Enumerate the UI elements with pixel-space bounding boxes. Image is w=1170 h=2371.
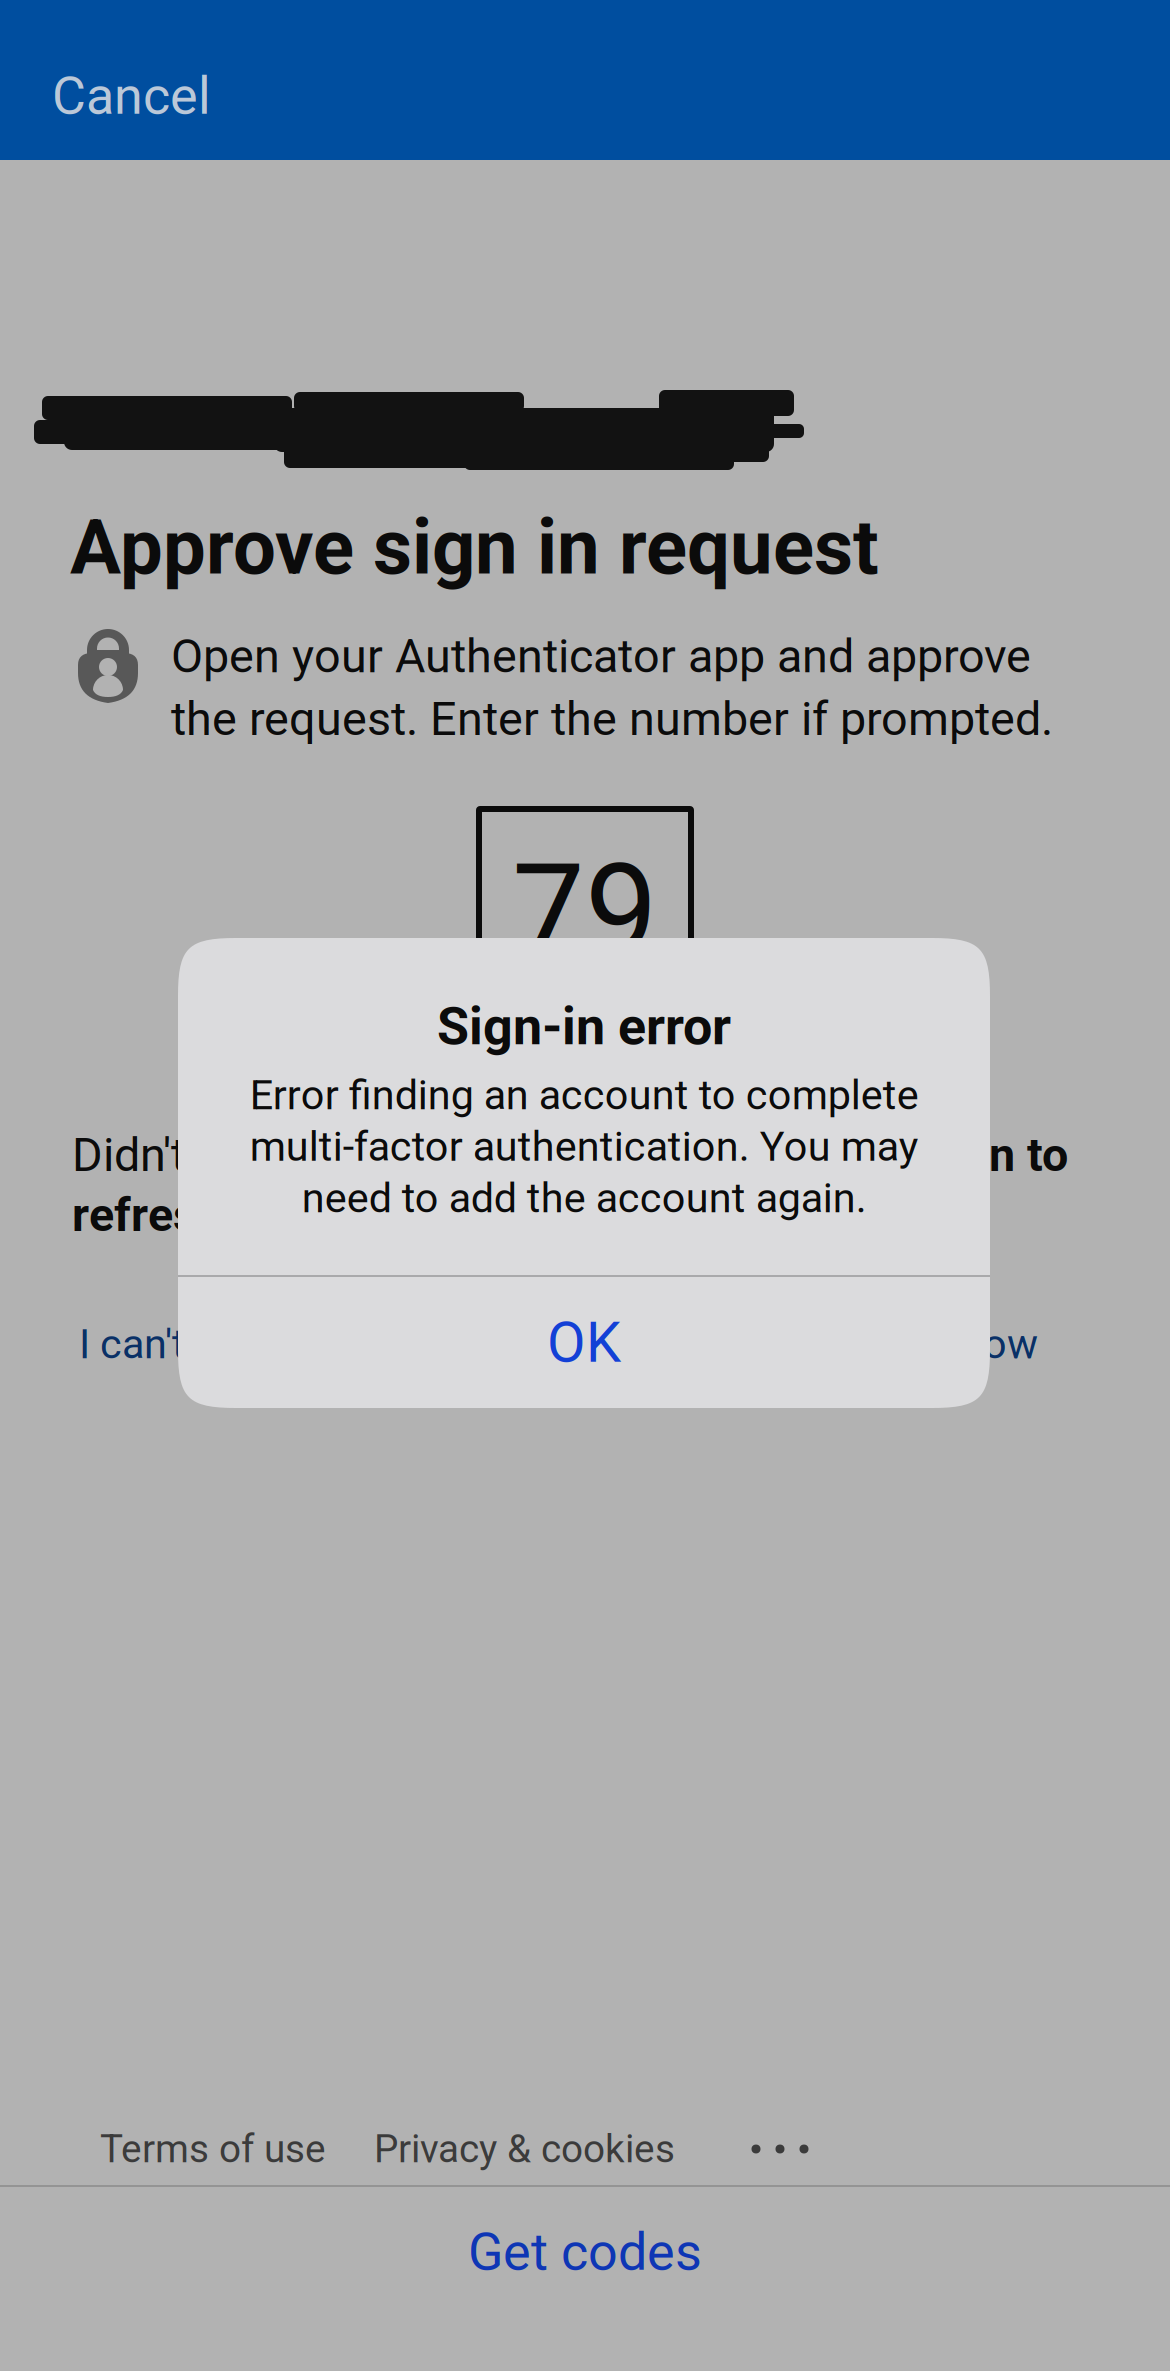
button[interactable]: Terms of use [100,2120,330,2178]
staticText: Didn't see a number? Go back and [72,1128,774,1182]
button[interactable]: Privacy & cookies [374,2120,694,2178]
staticText: sign in to [876,1128,1068,1182]
staticText: Open your Authenticator app and approve … [171,629,1053,746]
button[interactable]: I can't use my Microsoft Authenticator a… [79,1316,1039,1372]
staticText: Terms of use [100,2126,326,2172]
button[interactable]: Get codes [0,2187,1170,2317]
staticText: refresh. [72,1188,237,1242]
staticText: Cancel [52,65,211,126]
button[interactable]: OK [178,1277,990,1408]
staticText: 79 [512,836,658,988]
staticText: I can't use my Microsoft Authenticator a… [79,1320,1038,1368]
staticText: Privacy & cookies [374,2126,675,2172]
staticText: Get codes [468,2221,702,2282]
staticText: Error finding an account to complete mul… [249,1071,918,1222]
button[interactable]: Cancel [52,46,282,146]
staticText: OK [547,1310,621,1375]
staticText: Sign-in error [437,996,731,1057]
button[interactable]: More [735,2120,825,2178]
staticText: Approve sign in request [70,503,879,592]
